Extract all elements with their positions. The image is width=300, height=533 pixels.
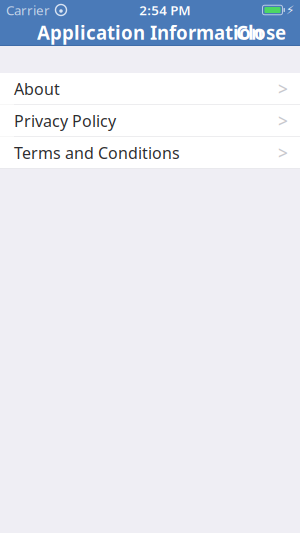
- staticText: ⚡︎: [286, 3, 294, 17]
- staticText: Application Information: [37, 20, 263, 45]
- staticText: >: [278, 77, 288, 100]
- button[interactable]: Close: [228, 16, 294, 49]
- staticText: 2:54 PM: [139, 1, 190, 19]
- staticText: >: [278, 141, 288, 164]
- staticText: Terms and Conditions: [14, 142, 180, 163]
- staticText: Carrier: [6, 1, 50, 19]
- staticText: About: [14, 78, 60, 99]
- button[interactable]: Privacy Policy: [0, 105, 300, 137]
- staticText: Privacy Policy: [14, 110, 116, 131]
- staticText: Close: [236, 20, 286, 45]
- staticText: >: [278, 109, 288, 132]
- button[interactable]: Terms and Conditions: [0, 137, 300, 168]
- button[interactable]: About: [0, 73, 300, 105]
